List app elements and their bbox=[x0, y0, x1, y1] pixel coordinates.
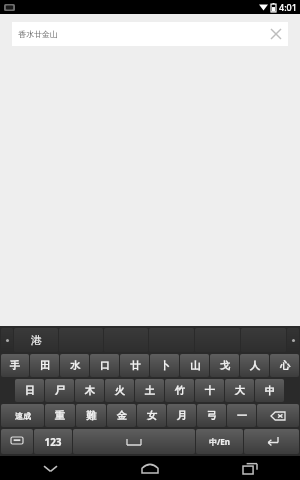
button[interactable]: 口 bbox=[90, 354, 119, 377]
staticText: 123 bbox=[44, 435, 62, 449]
button[interactable]: 卜 bbox=[150, 354, 179, 377]
staticText: 中 bbox=[265, 384, 275, 397]
staticText: 金 bbox=[117, 409, 127, 422]
button[interactable] bbox=[149, 328, 194, 352]
button[interactable]: 竹 bbox=[165, 379, 194, 402]
staticText: 木 bbox=[85, 384, 95, 397]
button[interactable]: 土 bbox=[135, 379, 164, 402]
staticText: 一 bbox=[237, 409, 247, 422]
staticText: 戈 bbox=[220, 359, 230, 372]
staticText: 港 bbox=[31, 333, 42, 347]
button[interactable]: 香水廿金山 bbox=[12, 22, 288, 46]
staticText: 速成 bbox=[15, 411, 31, 421]
button[interactable] bbox=[59, 328, 103, 352]
staticText: 土 bbox=[145, 384, 155, 397]
button[interactable]: 木 bbox=[75, 379, 104, 402]
button[interactable]: 一 bbox=[227, 404, 256, 427]
staticText: 重 bbox=[55, 409, 65, 422]
staticText: 山 bbox=[190, 359, 200, 372]
staticText: 中/En bbox=[209, 436, 230, 447]
staticText: 手 bbox=[10, 359, 20, 372]
button[interactable] bbox=[241, 328, 286, 352]
button[interactable]: Hide keyboard bbox=[0, 456, 100, 480]
button[interactable]: 十 bbox=[195, 379, 224, 402]
button[interactable]: 田 bbox=[30, 354, 59, 377]
staticText: 十 bbox=[205, 384, 215, 397]
button[interactable]: 日 bbox=[15, 379, 44, 402]
button[interactable]: 月 bbox=[167, 404, 196, 427]
button[interactable]: 大 bbox=[225, 379, 254, 402]
button[interactable]: 123 bbox=[34, 429, 72, 454]
button[interactable]: More candidates bbox=[287, 328, 299, 352]
button[interactable]: 尸 bbox=[45, 379, 74, 402]
staticText: 水 bbox=[70, 359, 80, 372]
button[interactable]: 廿 bbox=[120, 354, 149, 377]
button[interactable]: 難 bbox=[76, 404, 106, 427]
staticText: 口 bbox=[100, 359, 110, 372]
button[interactable]: Enter bbox=[244, 429, 299, 454]
button[interactable]: 火 bbox=[105, 379, 134, 402]
staticText: 卜 bbox=[160, 359, 170, 372]
button[interactable]: 心 bbox=[270, 354, 299, 377]
button[interactable]: 水 bbox=[60, 354, 89, 377]
staticText: 心 bbox=[280, 359, 290, 372]
button[interactable]: 女 bbox=[137, 404, 166, 427]
staticText: 弓 bbox=[207, 409, 217, 422]
staticText: 竹 bbox=[175, 384, 185, 397]
staticText: 廿 bbox=[130, 359, 140, 372]
staticText: 火 bbox=[115, 384, 125, 397]
button[interactable]: 山 bbox=[180, 354, 209, 377]
button[interactable]: 人 bbox=[240, 354, 269, 377]
button[interactable] bbox=[104, 328, 148, 352]
button[interactable]: 弓 bbox=[197, 404, 226, 427]
staticText: 田 bbox=[40, 359, 50, 372]
staticText: 難 bbox=[86, 409, 96, 422]
button[interactable]: Home bbox=[100, 456, 200, 480]
button[interactable]: 金 bbox=[107, 404, 136, 427]
staticText: 4:01 bbox=[279, 1, 297, 13]
button[interactable]: 中 bbox=[255, 379, 284, 402]
staticText: 日 bbox=[25, 384, 35, 397]
button[interactable] bbox=[195, 328, 240, 352]
button[interactable]: Previous candidates bbox=[1, 328, 13, 352]
button[interactable]: Switch keyboard bbox=[1, 429, 33, 454]
staticText: 尸 bbox=[55, 384, 65, 397]
button[interactable]: Backspace bbox=[257, 404, 299, 427]
staticText: 人 bbox=[250, 359, 260, 372]
button[interactable]: 速成 bbox=[1, 404, 44, 427]
button[interactable]: 手 bbox=[1, 354, 29, 377]
staticText: 月 bbox=[177, 409, 187, 422]
button[interactable]: Space bbox=[73, 429, 195, 454]
button[interactable]: Clear search bbox=[264, 22, 288, 46]
button[interactable]: 重 bbox=[45, 404, 75, 427]
button[interactable]: 戈 bbox=[210, 354, 239, 377]
staticText: 香水廿金山 bbox=[18, 29, 58, 39]
staticText: 女 bbox=[147, 409, 157, 422]
staticText: 大 bbox=[235, 384, 245, 397]
button[interactable]: 港 bbox=[14, 328, 58, 352]
button[interactable]: 中/En bbox=[196, 429, 243, 454]
button[interactable]: Recent apps bbox=[200, 456, 300, 480]
